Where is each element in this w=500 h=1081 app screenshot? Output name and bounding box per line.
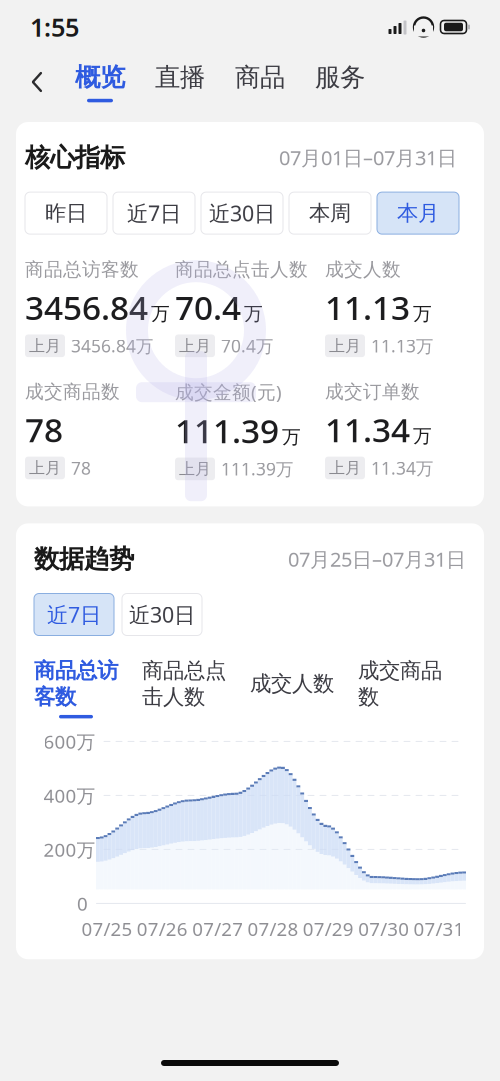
staticText: 成交人数 (250, 671, 334, 697)
button[interactable]: 昨日 (25, 192, 107, 234)
button[interactable]: 本月 (377, 192, 459, 234)
staticText: 万 (413, 302, 432, 325)
staticText: 11.13万 (371, 334, 433, 357)
button[interactable]: 近7日 (34, 593, 114, 635)
staticText: 万 (413, 425, 432, 447)
staticText: 商品总点击人数 (142, 657, 226, 710)
button[interactable]: 本周 (289, 192, 371, 234)
staticText: 成交金额(元) (175, 379, 282, 404)
staticText: 07/29 (303, 916, 354, 941)
staticText: 111.39 (175, 408, 279, 452)
staticText: 服务 (315, 62, 365, 93)
button[interactable]: 概览 (60, 57, 140, 107)
staticText: 商品 (235, 62, 285, 93)
staticText: 07/25 (81, 916, 132, 941)
staticText: 07/26 (137, 916, 188, 941)
staticText: 成交人数 (325, 258, 401, 281)
staticText: 11.34 (325, 407, 410, 451)
staticText: 1:55 (30, 10, 79, 44)
staticText: 本月 (397, 200, 439, 226)
staticText: 近30日 (129, 600, 195, 629)
staticText: 上月 (329, 458, 361, 478)
staticText: 上月 (179, 336, 211, 356)
button[interactable]: 直播 (140, 57, 220, 107)
staticText: 111.39万 (221, 457, 293, 480)
staticText: 78 (25, 407, 63, 451)
staticText: 3456.84万 (71, 334, 153, 357)
staticText: 78 (71, 456, 91, 479)
staticText: 直播 (155, 62, 205, 93)
staticText: 数据趋势 (34, 543, 134, 574)
button[interactable]: 近30日 (201, 192, 283, 234)
staticText: 07/30 (358, 916, 409, 941)
button[interactable]: 成交人数 (250, 671, 334, 705)
staticText: 万 (151, 302, 170, 325)
staticText: 成交商品数 (25, 380, 120, 403)
staticText: 07/31 (413, 916, 464, 941)
staticText: 万 (282, 425, 301, 448)
staticText: 11.13 (325, 285, 410, 329)
staticText: 600万 (43, 729, 95, 754)
staticText: 万 (244, 302, 263, 325)
staticText: 成交订单数 (325, 380, 420, 403)
staticText: 概览 (75, 62, 125, 93)
staticText: 核心指标 (25, 142, 125, 173)
button[interactable]: 返回 (14, 59, 60, 105)
staticText: 本周 (309, 200, 351, 226)
button[interactable]: 商品总访客数 (34, 657, 118, 718)
staticText: 70.4 (175, 285, 241, 329)
staticText: 07/27 (192, 916, 243, 941)
staticText: 商品总访客数 (25, 258, 139, 281)
staticText: 近7日 (127, 199, 181, 227)
staticText: 昨日 (45, 200, 87, 226)
staticText: 近7日 (47, 600, 101, 629)
staticText: 400万 (43, 783, 95, 808)
staticText: 商品总点击人数 (175, 258, 308, 281)
button[interactable]: 成交商品数 (358, 657, 442, 718)
button[interactable]: 商品 (220, 57, 300, 107)
staticText: 07月01日–07月31日 (279, 144, 457, 171)
staticText: 上月 (29, 458, 61, 478)
button[interactable]: 近30日 (122, 593, 202, 635)
staticText: 近30日 (209, 199, 275, 227)
button[interactable]: 近7日 (113, 192, 195, 234)
staticText: 上月 (29, 336, 61, 356)
button[interactable]: 商品总点击人数 (142, 657, 226, 718)
button[interactable]: 服务 (300, 57, 380, 107)
staticText: 商品总访客数 (34, 657, 118, 710)
staticText: 上月 (329, 336, 361, 356)
staticText: 07月25日–07月31日 (288, 546, 466, 572)
staticText: 11.34万 (371, 456, 433, 479)
staticText: 200万 (43, 837, 95, 862)
staticText: 成交商品数 (358, 657, 442, 710)
staticText: 0 (77, 891, 88, 916)
staticText: 3456.84 (25, 285, 148, 329)
staticText: 上月 (179, 459, 211, 479)
staticText: 07/28 (247, 916, 298, 941)
staticText: 70.4万 (221, 334, 273, 357)
